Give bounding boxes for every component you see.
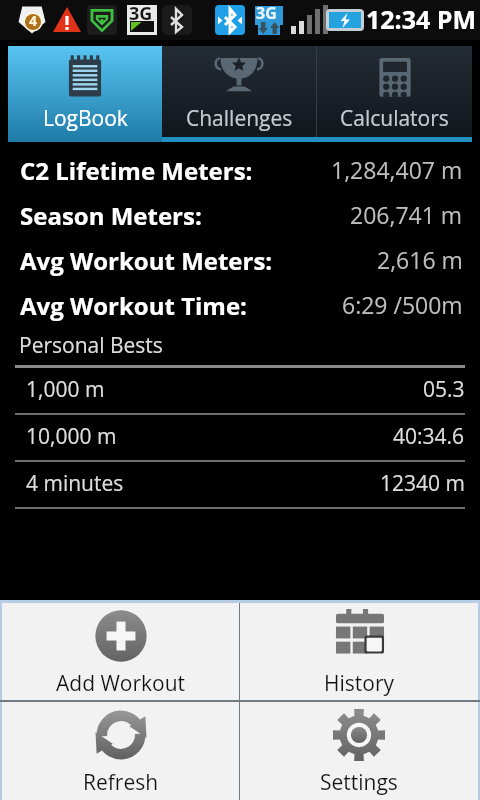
staticText: Challenges bbox=[186, 104, 293, 133]
staticText: 05.3 bbox=[423, 375, 465, 404]
staticText: 40:34.6 bbox=[393, 422, 465, 451]
button[interactable]: History bbox=[240, 603, 478, 700]
staticText: 12340 m bbox=[380, 469, 465, 498]
staticText: 10,000 m bbox=[26, 422, 117, 451]
staticText: 1,284,407 m bbox=[331, 154, 463, 185]
staticText: Settings bbox=[320, 768, 398, 797]
staticText: Refresh bbox=[83, 768, 159, 797]
staticText: Calculators bbox=[340, 104, 449, 133]
staticText: 6:29 /500m bbox=[342, 289, 463, 320]
staticText: 1,000 m bbox=[26, 375, 105, 404]
button[interactable]: 4 minutes bbox=[0, 462, 480, 507]
staticText: 4 bbox=[29, 11, 38, 30]
staticText: Avg Workout Time: bbox=[20, 289, 247, 322]
staticText: C2 Lifetime Meters: bbox=[20, 154, 253, 187]
staticText: 206,741 m bbox=[350, 199, 463, 230]
staticText: Add Workout bbox=[56, 669, 186, 698]
staticText: 3G bbox=[256, 2, 277, 24]
staticText: LogBook bbox=[43, 104, 128, 133]
button[interactable]: 1,000 m bbox=[0, 368, 480, 413]
button[interactable]: Refresh bbox=[2, 702, 239, 800]
staticText: Personal Bests bbox=[19, 331, 163, 360]
button[interactable]: LogBook bbox=[8, 46, 162, 142]
button[interactable]: Calculators bbox=[317, 46, 472, 142]
staticText: 12:34 PM bbox=[366, 2, 477, 36]
staticText: 4 minutes bbox=[26, 469, 124, 498]
button[interactable]: Add Workout bbox=[2, 603, 239, 700]
staticText: History bbox=[324, 669, 395, 698]
staticText: 3G bbox=[129, 1, 153, 26]
staticText: Season Meters: bbox=[20, 199, 202, 232]
staticText: 2,616 m bbox=[377, 244, 463, 275]
button[interactable]: Challenges bbox=[162, 46, 316, 142]
staticText: Avg Workout Meters: bbox=[20, 244, 273, 277]
button[interactable]: 10,000 m bbox=[0, 415, 480, 460]
button[interactable]: Settings bbox=[240, 702, 478, 800]
